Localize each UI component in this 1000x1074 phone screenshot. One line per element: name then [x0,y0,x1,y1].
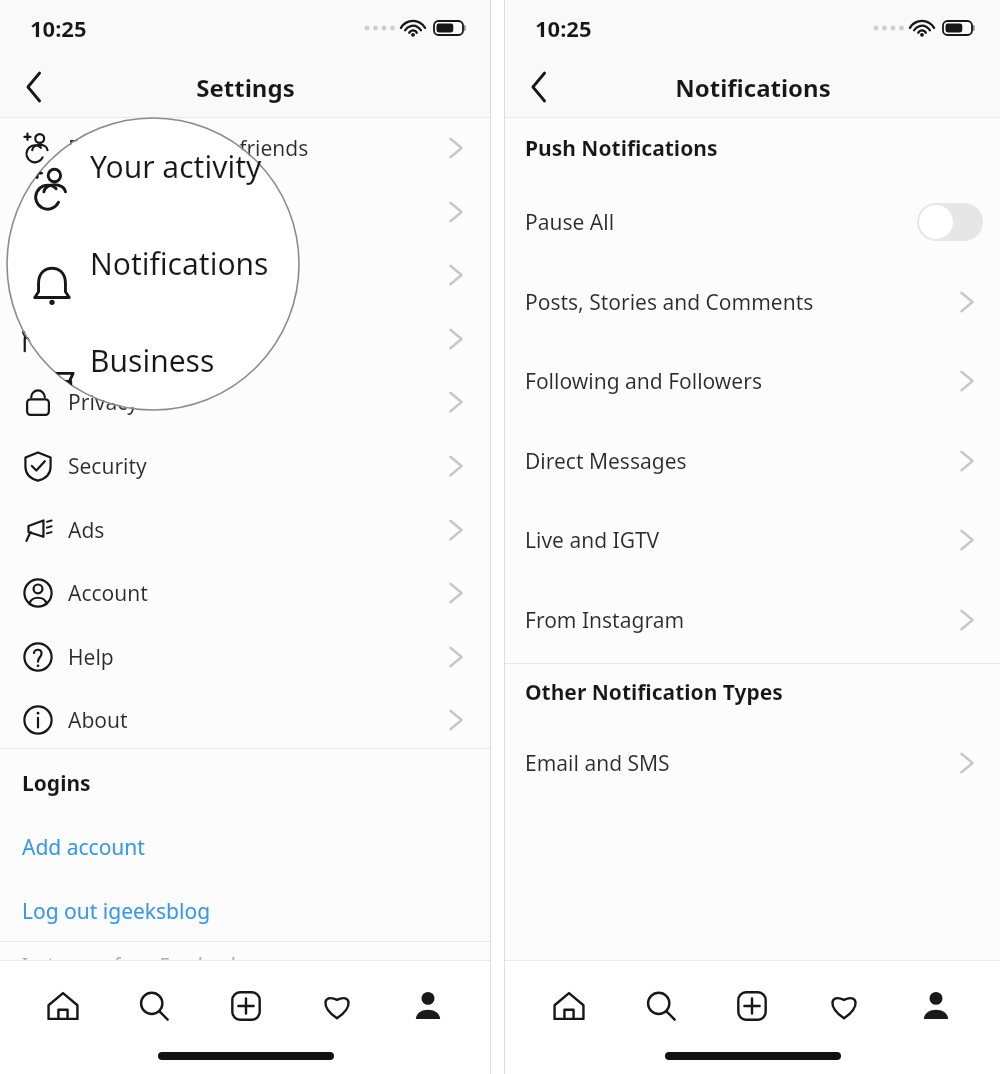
button[interactable]: Security [0,442,491,490]
button[interactable]: Activity [816,978,872,1034]
staticText: Posts, Stories and Comments [525,288,814,317]
button[interactable]: Ads [0,506,491,554]
button[interactable]: Live and IGTV [505,514,1000,566]
staticText: Pause All [525,208,615,237]
staticText: From Instagram [525,606,685,635]
button[interactable]: Notifications [0,251,491,299]
button[interactable]: Back [515,63,563,111]
button[interactable]: Privacy [0,378,491,426]
button[interactable]: Posts, Stories and Comments [505,276,1000,328]
staticText: Logins [22,769,91,798]
staticText: Notifications [90,243,269,284]
button[interactable]: Pause All [505,196,1000,248]
button[interactable]: Search [633,978,689,1034]
button[interactable]: About [0,696,491,744]
staticText: Follow and invite friends [68,134,309,163]
button[interactable]: Search [126,978,182,1034]
staticText: Account [68,579,148,608]
staticText: Push Notifications [525,134,718,163]
button[interactable]: Email and SMS [505,737,1000,789]
button[interactable]: Add account [0,820,491,874]
staticText: Other Notification Types [525,678,783,707]
staticText: Privacy [68,388,139,417]
staticText: 10:25 [30,13,87,43]
staticText: Log out igeeksblog [22,897,211,926]
button[interactable]: Profile [400,978,456,1034]
button[interactable]: Home [541,978,597,1034]
staticText: Help [68,643,114,672]
button[interactable]: Direct Messages [505,435,1000,487]
staticText: Your activity [90,146,262,187]
button[interactable]: From Instagram [505,594,1000,646]
staticText: Business [90,340,215,381]
staticText: Instagram from Facebook [22,952,241,977]
staticText: Following and Followers [525,367,762,396]
button[interactable]: Following and Followers [505,355,1000,407]
staticText: Ads [68,516,105,545]
button[interactable]: Back [10,63,58,111]
staticText: Email and SMS [525,749,670,778]
button[interactable]: Log out igeeksblog [0,884,491,938]
button[interactable]: Account [0,569,491,617]
button[interactable]: Follow and invite friends [0,124,491,172]
button[interactable]: Help [0,633,491,681]
staticText: Live and IGTV [525,526,660,555]
staticText: Settings [196,71,295,104]
staticText: Business [68,325,156,354]
button[interactable]: Home [35,978,91,1034]
staticText: Security [68,452,147,481]
button[interactable]: Logins [0,757,491,809]
button[interactable]: Create [218,978,274,1034]
button[interactable]: Business [0,315,491,363]
staticText: Notifications [675,71,831,104]
staticText: Add account [22,833,145,862]
staticText: Notifications [68,261,193,290]
staticText: About [68,706,128,735]
staticText: 10:25 [535,13,592,43]
button[interactable]: Create [724,978,780,1034]
button[interactable]: Your activity [0,188,491,236]
button[interactable]: Profile [908,978,964,1034]
button[interactable]: Activity [309,978,365,1034]
staticText: Direct Messages [525,447,687,476]
